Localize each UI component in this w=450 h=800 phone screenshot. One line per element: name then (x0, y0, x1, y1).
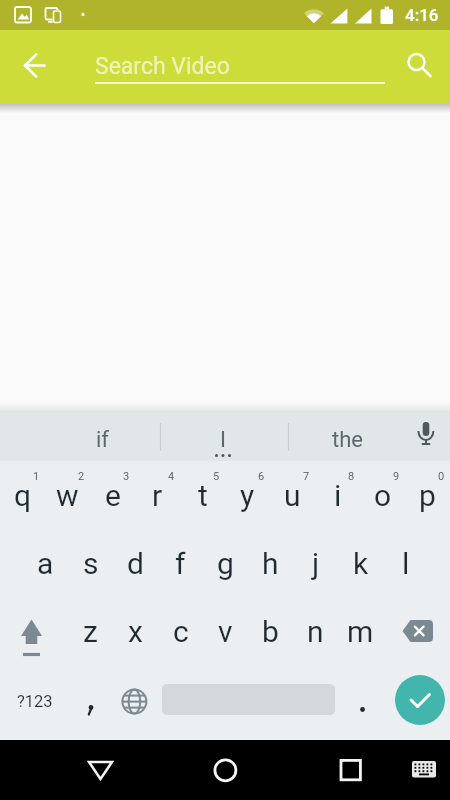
staticText: 9 (393, 470, 400, 483)
staticText: m (347, 614, 374, 649)
staticText: c (173, 614, 189, 649)
button[interactable] (395, 675, 445, 725)
staticText: 4 (168, 470, 175, 483)
staticText: p (419, 478, 436, 513)
staticText: n (307, 614, 324, 649)
button[interactable]: f (158, 539, 203, 587)
staticText: f (175, 546, 186, 581)
staticText: I (220, 427, 226, 453)
button[interactable]: j (293, 539, 338, 587)
staticText: if (96, 427, 109, 453)
staticText: b (262, 614, 279, 649)
staticText: j (312, 546, 320, 581)
staticText: 8 (348, 470, 355, 483)
button[interactable]: the (297, 416, 397, 464)
staticText: z (83, 614, 98, 649)
staticText: x (128, 614, 143, 649)
button[interactable]: q (0, 471, 45, 519)
staticText: l (402, 546, 410, 581)
button[interactable] (392, 38, 442, 88)
button[interactable] (68, 676, 113, 724)
staticText: 2 (78, 470, 85, 483)
staticText: 3 (123, 470, 130, 483)
staticText: a (37, 546, 54, 581)
staticText: s (83, 546, 99, 581)
staticText: 1 (33, 470, 40, 483)
button[interactable]: x (113, 607, 158, 655)
button[interactable]: h (248, 539, 293, 587)
button[interactable]: d (113, 539, 158, 587)
button[interactable]: o (360, 471, 405, 519)
button[interactable] (11, 42, 59, 90)
button[interactable]: s (68, 539, 113, 587)
button[interactable]: w (45, 471, 90, 519)
staticText: o (374, 478, 392, 513)
staticText: q (14, 478, 32, 513)
staticText: i (334, 478, 342, 513)
staticText: 6 (258, 470, 265, 483)
button[interactable]: i (315, 471, 360, 519)
staticText: w (56, 478, 79, 513)
button[interactable]: g (203, 539, 248, 587)
staticText: e (105, 478, 121, 513)
button[interactable] (0, 606, 62, 654)
button[interactable]: I (168, 416, 278, 464)
button[interactable]: l (383, 539, 428, 587)
staticText: 5 (213, 470, 220, 483)
staticText: the (332, 427, 363, 453)
staticText: v (218, 614, 233, 649)
button[interactable]: y (225, 471, 270, 519)
button[interactable]: c (158, 607, 203, 655)
button[interactable] (326, 746, 374, 794)
button[interactable] (388, 606, 450, 654)
staticText: u (284, 478, 301, 513)
button[interactable] (400, 746, 448, 794)
button[interactable]: k (338, 539, 383, 587)
button[interactable]: t (180, 471, 225, 519)
button[interactable]: ?123 (4, 677, 66, 725)
button[interactable]: e (90, 471, 135, 519)
staticText: 4:16 (405, 5, 439, 25)
button[interactable] (76, 746, 124, 794)
staticText: r (152, 478, 163, 513)
button[interactable]: u (270, 471, 315, 519)
button[interactable] (201, 746, 249, 794)
staticText: Search Video (95, 53, 230, 80)
staticText: 7 (303, 470, 310, 483)
staticText: k (353, 546, 369, 581)
button[interactable]: m (338, 607, 383, 655)
staticText: t (198, 478, 208, 513)
button[interactable]: if (47, 416, 157, 464)
button[interactable] (401, 413, 450, 461)
button[interactable]: p (405, 471, 450, 519)
button[interactable]: a (23, 539, 68, 587)
staticText: 0 (438, 470, 445, 483)
button[interactable]: r (135, 471, 180, 519)
staticText: g (217, 546, 234, 581)
button[interactable]: v (203, 607, 248, 655)
staticText: y (240, 478, 255, 513)
staticText: h (262, 546, 279, 581)
staticText: d (127, 546, 144, 581)
button[interactable]: n (293, 607, 338, 655)
button[interactable]: z (68, 607, 113, 655)
button[interactable]: b (248, 607, 293, 655)
staticText: ?123 (17, 692, 53, 711)
button[interactable] (112, 676, 157, 724)
button[interactable] (340, 676, 385, 724)
